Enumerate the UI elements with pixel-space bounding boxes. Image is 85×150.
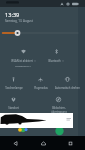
- staticText: Bluetooth: [48, 59, 61, 63]
- staticText: Taschenlampe: [5, 86, 23, 90]
- button[interactable]: Recent apps: [58, 136, 82, 150]
- button[interactable]: Bildschirm- übertragung: [45, 96, 72, 115]
- button[interactable]: Bluetooth: [39, 48, 73, 74]
- staticText: 13:39: [5, 11, 20, 19]
- button[interactable]: Home: [31, 136, 55, 150]
- button[interactable]: Brightness: [0, 30, 85, 36]
- staticText: Standort: [8, 106, 19, 110]
- staticText: Bildschirm- übertragung: [51, 106, 67, 114]
- staticText: Samstag, 13. August: [5, 19, 33, 23]
- button[interactable]: WLAN ist aktiviert: [6, 48, 40, 74]
- button[interactable]: Back: [3, 136, 27, 150]
- button[interactable]: [0, 113, 85, 136]
- staticText: WLAN ist aktiviert: [11, 59, 33, 63]
- staticText: Vodafone-0A1: [15, 64, 31, 67]
- staticText: Flugmodus: [34, 86, 48, 90]
- staticText: Automatisch drehen: [55, 86, 80, 90]
- button[interactable]: Automatisch drehen: [54, 76, 81, 95]
- button[interactable]: Flugmodus: [27, 76, 54, 95]
- button[interactable]: Taschenlampe: [0, 76, 27, 95]
- button[interactable]: Standort: [0, 96, 27, 115]
